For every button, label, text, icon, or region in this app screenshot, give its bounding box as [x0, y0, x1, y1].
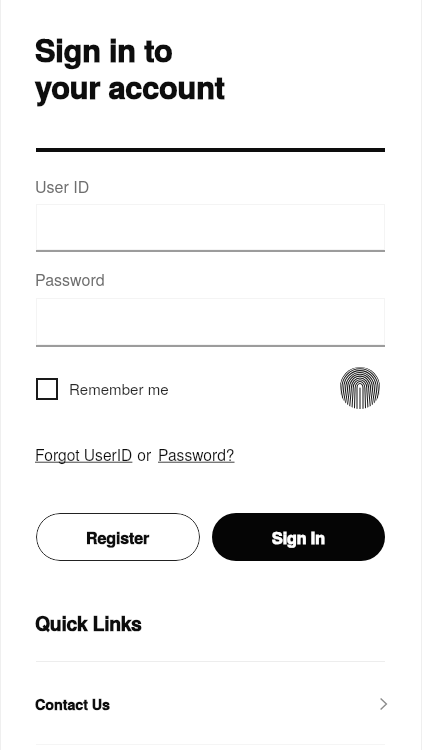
staticText: Sign In [272, 526, 325, 549]
staticText: Sign in to [35, 27, 173, 71]
button[interactable]: Forgot UserID [35, 443, 133, 465]
staticText: Remember me [69, 378, 169, 400]
staticText: Register [86, 526, 150, 549]
button[interactable]: Contact Us [0, 662, 422, 750]
button[interactable]: Register [36, 513, 200, 561]
staticText: Quick Links [35, 609, 142, 637]
button[interactable]: Password? [158, 443, 235, 465]
staticText: User ID [35, 175, 90, 198]
staticText: or [133, 443, 156, 465]
button[interactable]: Sign In [212, 513, 385, 561]
staticText: Contact Us [35, 694, 111, 715]
button[interactable]: Remember me [36, 378, 169, 400]
button[interactable]: Sign in with fingerprint [337, 365, 383, 411]
staticText: your account [35, 64, 225, 108]
staticText: Password [35, 268, 105, 291]
